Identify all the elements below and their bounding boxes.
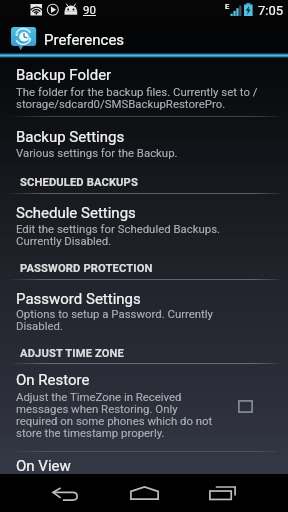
staticText: Various settings for the Backup. xyxy=(16,146,178,159)
staticText: 90 xyxy=(83,3,96,16)
staticText: Schedule Settings xyxy=(16,204,136,222)
staticText: On View xyxy=(16,457,71,475)
button[interactable] xyxy=(0,194,288,250)
staticText: required on some phones which do not xyxy=(16,414,213,427)
button[interactable]: Toggle On Restore xyxy=(238,400,253,413)
button[interactable]: Home xyxy=(108,474,180,512)
staticText: E xyxy=(225,2,230,11)
staticText: storage/sdcard0/SMSBackupRestorePro. xyxy=(16,97,226,110)
staticText: PASSWORD PROTECTION xyxy=(20,262,153,275)
button[interactable]: Recent apps xyxy=(187,474,257,512)
button[interactable]: Back xyxy=(28,474,101,512)
staticText: The folder for the backup files. Current… xyxy=(16,85,258,98)
staticText: Preferences xyxy=(44,31,125,49)
button[interactable] xyxy=(0,280,288,334)
button[interactable]: Preferences, navigate up xyxy=(0,20,288,55)
button[interactable] xyxy=(0,59,288,117)
staticText: Options to setup a Password. Currently xyxy=(16,307,213,320)
staticText: Password Settings xyxy=(16,290,141,308)
staticText: SCHEDULED BACKUPS xyxy=(20,176,138,189)
staticText: Currently Disabled. xyxy=(16,234,112,247)
staticText: store the timestamp properly. xyxy=(16,426,165,439)
staticText: On Restore xyxy=(16,371,90,389)
button[interactable] xyxy=(0,117,288,159)
staticText: Disabled. xyxy=(16,319,63,332)
staticText: messages when Restoring. Only xyxy=(16,402,178,415)
staticText: Adjust the TimeZone in Received xyxy=(16,390,182,403)
button[interactable] xyxy=(0,365,288,451)
staticText: Edit the settings for Scheduled Backups. xyxy=(16,222,221,235)
staticText: Backup Folder xyxy=(16,66,112,84)
staticText: 7:05 xyxy=(258,3,284,18)
button[interactable] xyxy=(0,452,288,492)
staticText: Backup Settings xyxy=(16,128,125,146)
staticText: ADJUST TIME ZONE xyxy=(20,347,124,360)
